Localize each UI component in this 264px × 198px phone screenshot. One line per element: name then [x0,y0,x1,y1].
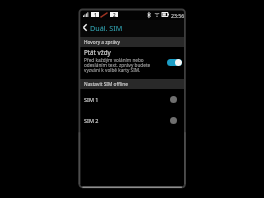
other: Back [83,24,87,31]
staticText: SIM 1 [84,96,99,103]
staticText: Nastavit SIM offline [84,81,128,88]
staticText: Duál. SIM [90,23,123,33]
staticText: 23:56 [171,12,184,19]
staticText: 1 [94,12,97,17]
staticText: SIM 2 [84,117,99,124]
button[interactable]: Back [80,20,184,37]
staticText: Ptát vždy [84,48,111,57]
button[interactable]: SIM 1 [80,89,184,110]
staticText: 2 [113,12,116,17]
staticText: Hovory a zprávy [84,39,120,46]
button[interactable]: Ptát vždy [80,47,184,79]
button[interactable]: SIM 2 [80,110,184,131]
staticText: Před každým voláním nebo odesláním text.… [84,57,166,74]
